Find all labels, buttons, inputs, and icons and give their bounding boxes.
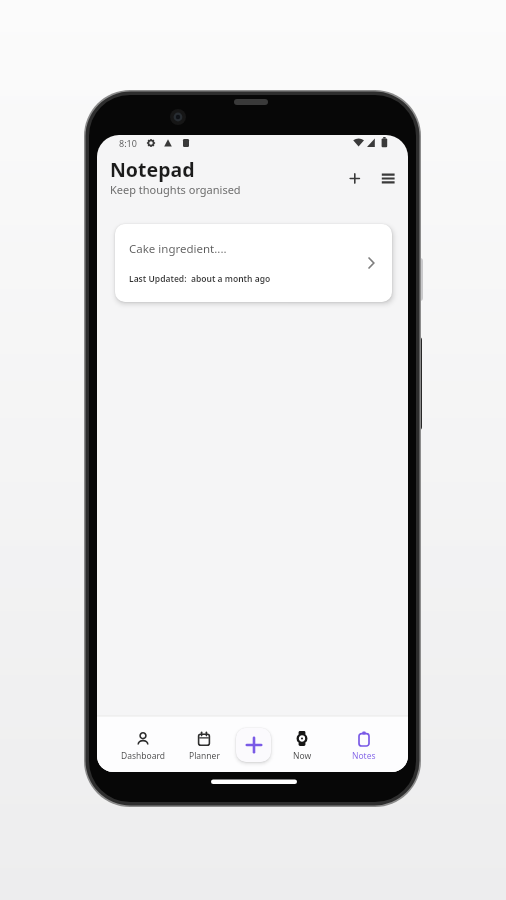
button[interactable]: Dashboard	[113, 731, 173, 762]
button[interactable]: Planner	[174, 731, 234, 762]
button[interactable]: Cake ingredient....	[115, 224, 392, 302]
staticText: Cake ingredient....	[129, 241, 227, 257]
staticText: Keep thoughts organised	[110, 182, 241, 197]
button[interactable]: Notes	[334, 731, 394, 762]
staticText: Notes	[352, 750, 376, 762]
staticText: Last Updated: about a month ago	[129, 273, 271, 285]
staticText: 8:10	[119, 137, 137, 149]
staticText: Notepad	[110, 156, 195, 183]
button[interactable]: Now	[272, 731, 332, 762]
staticText: Now	[293, 750, 312, 762]
staticText: Planner	[189, 750, 220, 762]
button[interactable]	[236, 728, 271, 762]
staticText: Dashboard	[121, 750, 166, 762]
